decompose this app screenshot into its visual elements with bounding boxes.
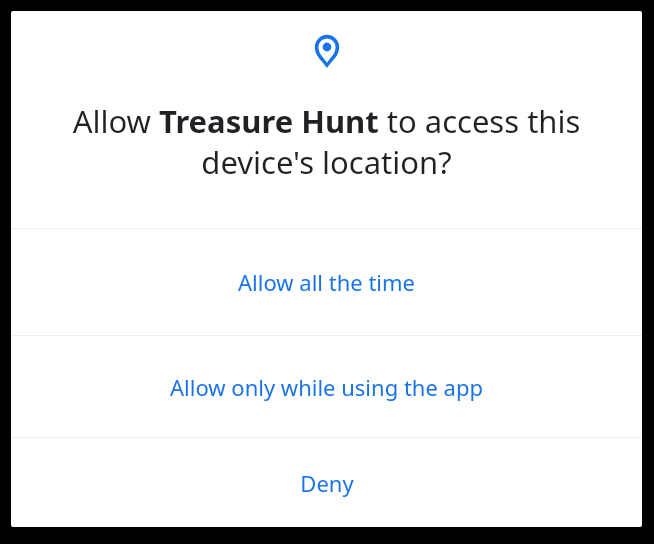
staticText: Allow only while using the app xyxy=(170,372,483,402)
other: Location xyxy=(313,33,341,69)
button[interactable]: Deny xyxy=(11,438,642,527)
staticText: Allow Treasure Hunt to access this devic… xyxy=(27,100,626,183)
button[interactable]: Allow all the time xyxy=(11,229,642,335)
staticText: Allow all the time xyxy=(238,267,415,297)
button[interactable]: Allow only while using the app xyxy=(11,336,642,437)
staticText: Deny xyxy=(300,468,354,498)
